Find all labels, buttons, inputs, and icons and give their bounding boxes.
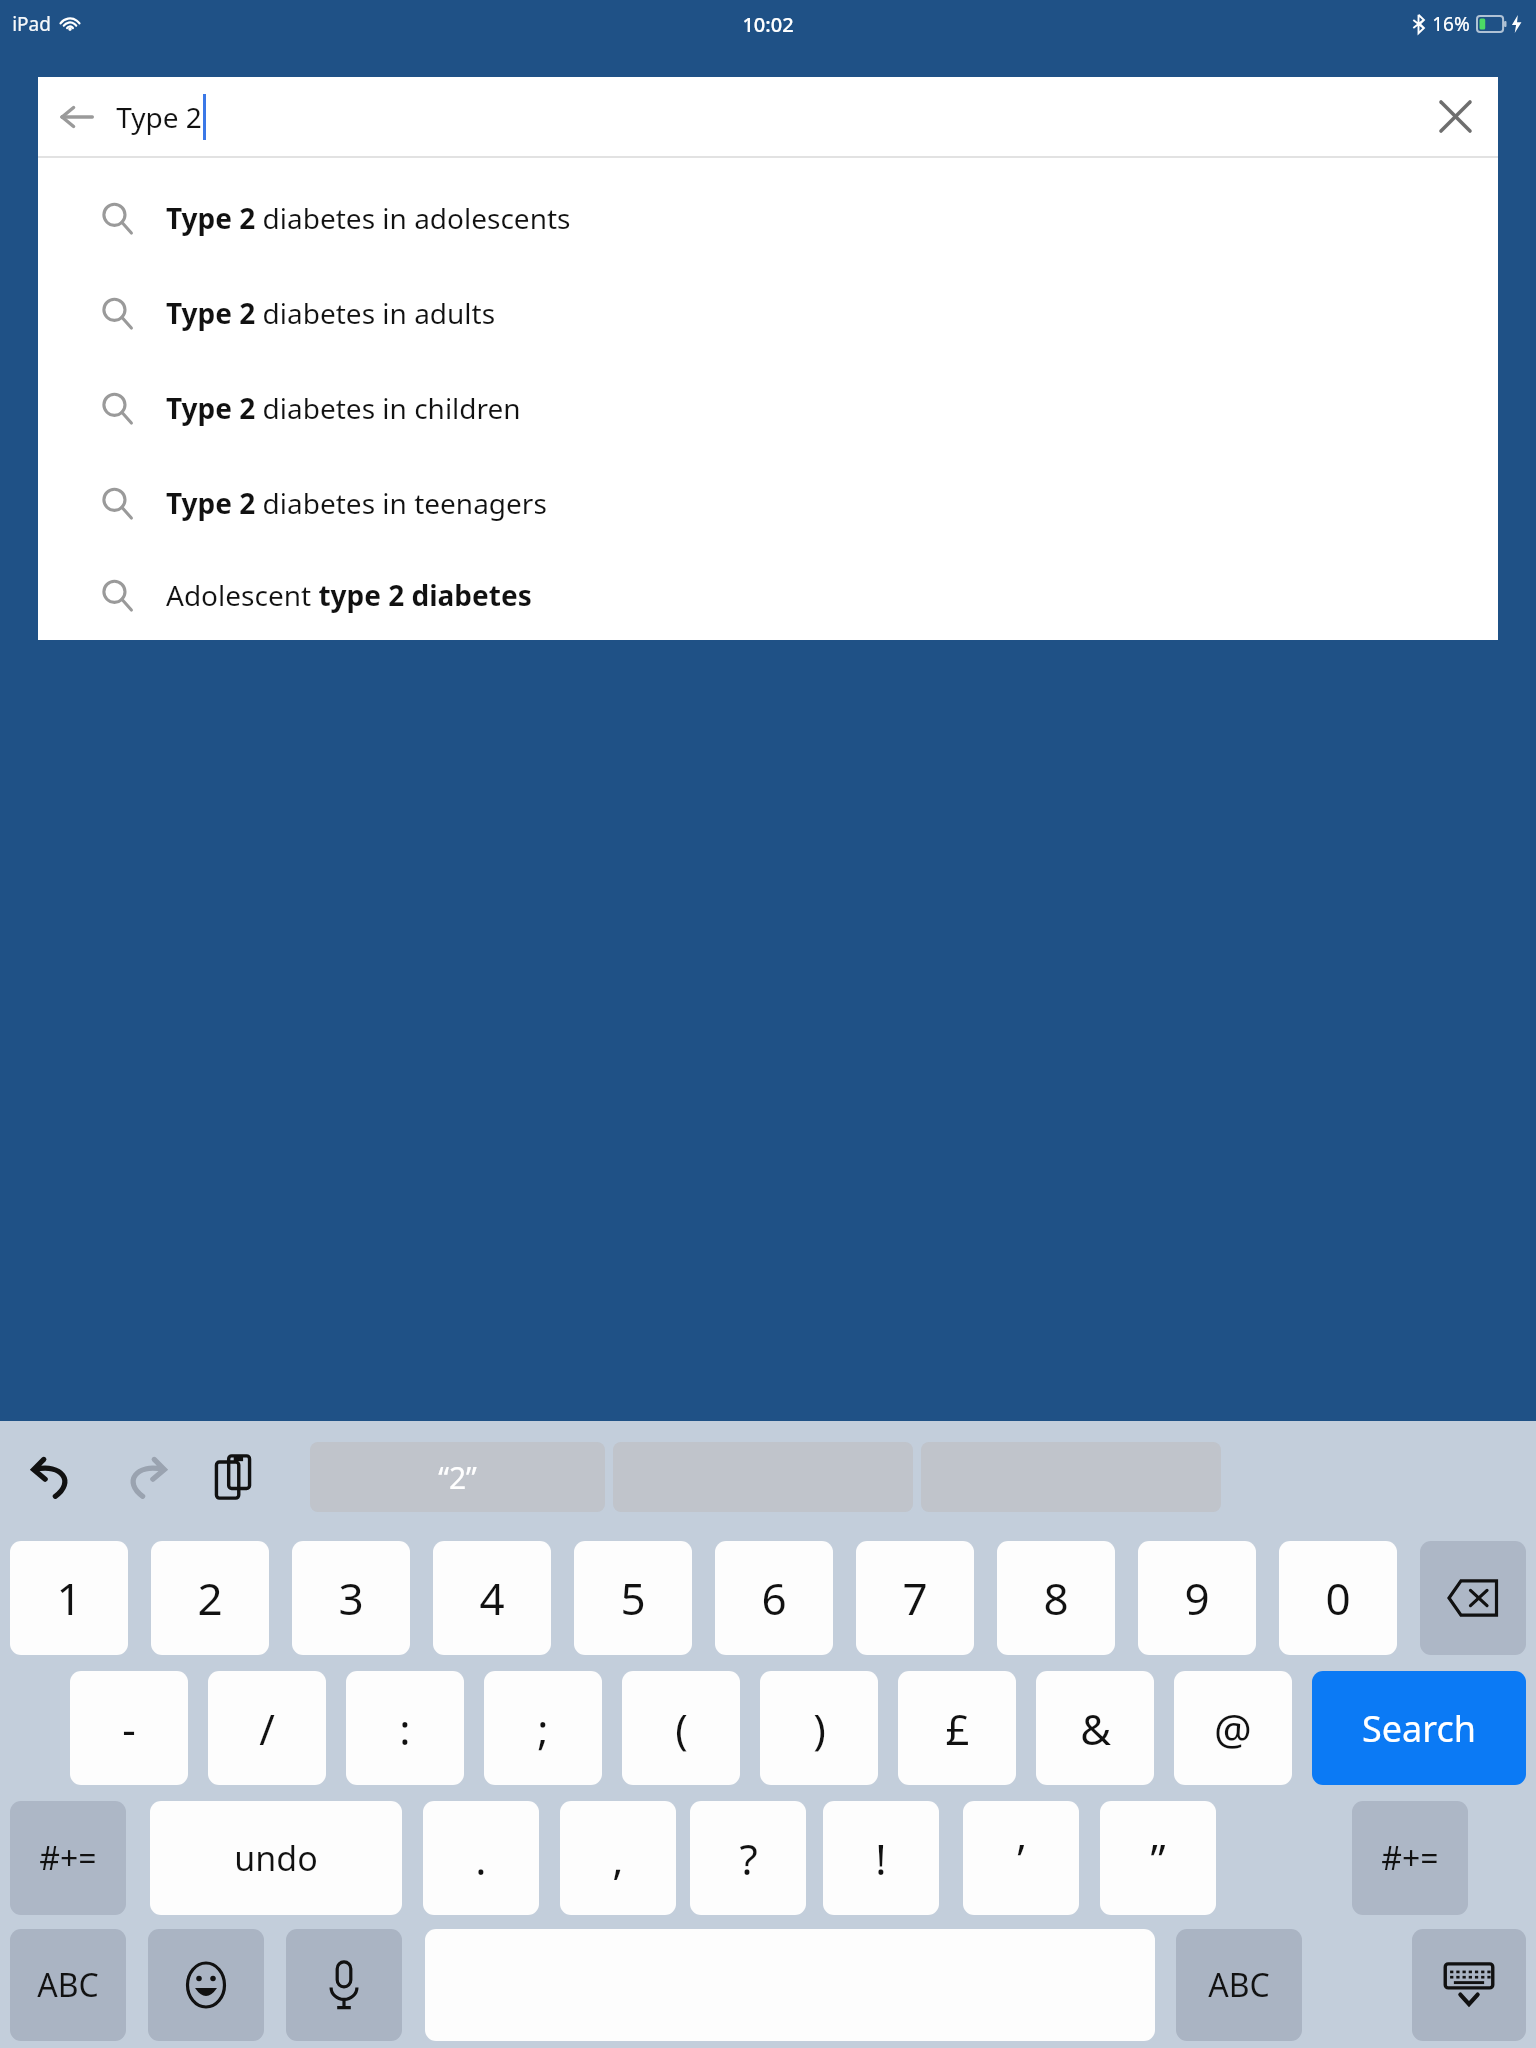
staticText: ( bbox=[675, 1700, 688, 1757]
button[interactable]: ABC bbox=[10, 1929, 126, 2041]
button[interactable]: 0 bbox=[1279, 1541, 1397, 1655]
staticText: Adolescent type 2 diabetes bbox=[166, 576, 532, 614]
button[interactable]: Redo bbox=[116, 1448, 174, 1506]
button[interactable]: . bbox=[423, 1801, 539, 1915]
staticText: Type 2 diabetes in adolescents bbox=[166, 199, 571, 237]
staticText: : bbox=[399, 1700, 411, 1757]
staticText: 5 bbox=[620, 1568, 646, 1628]
staticText: ) bbox=[813, 1700, 826, 1757]
button[interactable]: ABC bbox=[1176, 1929, 1302, 2041]
button[interactable]: 5 bbox=[574, 1541, 692, 1655]
button[interactable]: - bbox=[70, 1671, 188, 1785]
button[interactable]: : bbox=[346, 1671, 464, 1785]
staticText: & bbox=[1080, 1700, 1111, 1757]
button[interactable]: undo bbox=[150, 1801, 402, 1915]
button[interactable]: £ bbox=[898, 1671, 1016, 1785]
button[interactable]: 8 bbox=[997, 1541, 1115, 1655]
staticText: Type 2 diabetes in children bbox=[166, 389, 521, 427]
staticText: Type 2 diabetes in teenagers bbox=[166, 484, 547, 522]
staticText: 1 bbox=[56, 1568, 82, 1628]
button[interactable]: ! bbox=[823, 1801, 939, 1915]
staticText: #+= bbox=[39, 1836, 97, 1880]
staticText: #+= bbox=[1381, 1836, 1439, 1880]
staticText: ABC bbox=[1208, 1963, 1270, 2007]
button[interactable]: 3 bbox=[292, 1541, 410, 1655]
button[interactable]: ) bbox=[760, 1671, 878, 1785]
button[interactable]: Search bbox=[1312, 1671, 1526, 1785]
staticText: . bbox=[475, 1830, 487, 1887]
button[interactable]: / bbox=[208, 1671, 326, 1785]
staticText: Type 2 diabetes in adults bbox=[166, 294, 496, 332]
button[interactable]: 1 bbox=[10, 1541, 128, 1655]
button[interactable]: Undo bbox=[24, 1448, 82, 1506]
button[interactable]: Voice input bbox=[286, 1929, 402, 2041]
staticText: 3 bbox=[338, 1568, 364, 1628]
staticText: ABC bbox=[37, 1963, 99, 2007]
button[interactable]: ; bbox=[484, 1671, 602, 1785]
button[interactable]: , bbox=[560, 1801, 676, 1915]
staticText: ! bbox=[875, 1830, 887, 1887]
button[interactable]: @ bbox=[1174, 1671, 1292, 1785]
staticText: 0 bbox=[1325, 1568, 1351, 1628]
staticText: ; bbox=[537, 1700, 549, 1757]
staticText: Search bbox=[1362, 1704, 1476, 1753]
staticText: 10:02 bbox=[742, 11, 794, 38]
button[interactable]: Clear search bbox=[1412, 77, 1498, 156]
staticText: 6 bbox=[761, 1568, 787, 1628]
button[interactable]: Backspace bbox=[1420, 1541, 1526, 1655]
button[interactable]: Emoji bbox=[148, 1929, 264, 2041]
staticText: 8 bbox=[1043, 1568, 1069, 1628]
button[interactable]: Type 2 diabetes in children bbox=[38, 360, 1498, 455]
button[interactable]: Hide keyboard bbox=[1412, 1929, 1526, 2041]
button[interactable]: Type 2 diabetes in adolescents bbox=[38, 170, 1498, 265]
button[interactable]: 4 bbox=[433, 1541, 551, 1655]
staticText: / bbox=[259, 1700, 275, 1757]
staticText: 4 bbox=[479, 1568, 505, 1628]
button[interactable]: “2” bbox=[310, 1442, 605, 1512]
button[interactable]: ? bbox=[690, 1801, 806, 1915]
staticText: Type 2 bbox=[116, 98, 202, 136]
staticText: 9 bbox=[1184, 1568, 1210, 1628]
button[interactable]: Type 2 diabetes in teenagers bbox=[38, 455, 1498, 550]
staticText: 7 bbox=[902, 1568, 928, 1628]
staticText: undo bbox=[234, 1835, 318, 1881]
button[interactable]: Paste bbox=[204, 1448, 262, 1506]
button[interactable]: & bbox=[1036, 1671, 1154, 1785]
staticText: ? bbox=[739, 1830, 758, 1887]
button[interactable]: Adolescent type 2 diabetes bbox=[38, 550, 1498, 640]
button[interactable]: 7 bbox=[856, 1541, 974, 1655]
staticText: 16% bbox=[1432, 11, 1470, 37]
staticText: £ bbox=[945, 1700, 970, 1757]
button[interactable]: Type 2 diabetes in adults bbox=[38, 265, 1498, 360]
staticText: ’ bbox=[1017, 1830, 1025, 1887]
button[interactable]: ” bbox=[1100, 1801, 1216, 1915]
staticText: “2” bbox=[438, 1457, 477, 1498]
button[interactable]: #+= bbox=[1352, 1801, 1468, 1915]
staticText: ” bbox=[1150, 1830, 1166, 1887]
button[interactable]: Back bbox=[38, 77, 116, 156]
staticText: iPad bbox=[12, 11, 51, 37]
staticText: , bbox=[612, 1830, 624, 1887]
staticText: - bbox=[122, 1700, 136, 1757]
button[interactable]: 6 bbox=[715, 1541, 833, 1655]
button[interactable]: ( bbox=[622, 1671, 740, 1785]
staticText: @ bbox=[1214, 1700, 1252, 1757]
button[interactable]: 2 bbox=[151, 1541, 269, 1655]
button[interactable]: ’ bbox=[963, 1801, 1079, 1915]
button[interactable]: 9 bbox=[1138, 1541, 1256, 1655]
button[interactable]: #+= bbox=[10, 1801, 126, 1915]
staticText: 2 bbox=[197, 1568, 223, 1628]
